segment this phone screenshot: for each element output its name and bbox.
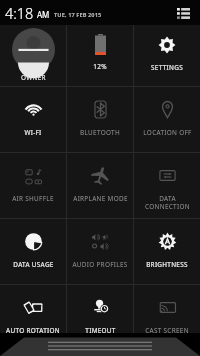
button[interactable]: AIR SHUFFLE — [0, 153, 66, 218]
button[interactable]: SETTINGS — [134, 25, 200, 86]
button[interactable]: 12% — [67, 25, 133, 86]
button[interactable]: CAST SCREEN — [134, 285, 200, 333]
button[interactable]: BRIGHTNESS — [134, 219, 200, 284]
staticText: BLUETOOTH — [80, 128, 120, 137]
staticText: TUE, 17 FEB 2015 — [54, 11, 102, 19]
staticText: AM — [37, 9, 50, 20]
staticText: TIMEOUT — [85, 326, 116, 333]
staticText: 4:18 — [5, 3, 34, 23]
staticText: AUDIO PROFILES — [72, 260, 128, 269]
button[interactable]: BLUETOOTH — [67, 87, 133, 152]
staticText: AIRPLANE MODE — [73, 194, 128, 203]
button[interactable]: OWNER — [0, 25, 66, 86]
staticText: 12% — [93, 62, 107, 71]
button[interactable]: LOCATION OFF — [134, 87, 200, 152]
staticText: BRIGHTNESS — [146, 260, 188, 269]
button[interactable]: AUTO ROTATION — [0, 285, 66, 333]
button[interactable]: DATA USAGE — [0, 219, 66, 284]
staticText: CAST SCREEN — [145, 326, 189, 333]
button[interactable]: Notification list — [173, 3, 193, 23]
staticText: AIR SHUFFLE — [12, 194, 54, 203]
button[interactable]: AUDIO PROFILES — [67, 219, 133, 284]
staticText: WI-FI — [24, 128, 42, 137]
button[interactable]: DATA CONNECTION — [134, 153, 200, 218]
button[interactable]: WI-FI — [0, 87, 66, 152]
staticText: SETTINGS — [151, 63, 183, 72]
button[interactable]: TIMEOUT — [67, 285, 133, 333]
staticText: OWNER — [21, 73, 46, 82]
staticText: DATA USAGE — [13, 260, 54, 269]
staticText: AUTO ROTATION — [6, 326, 60, 333]
staticText: DATA CONNECTION — [145, 194, 190, 211]
button[interactable]: AIRPLANE MODE — [67, 153, 133, 218]
staticText: LOCATION OFF — [143, 128, 192, 137]
